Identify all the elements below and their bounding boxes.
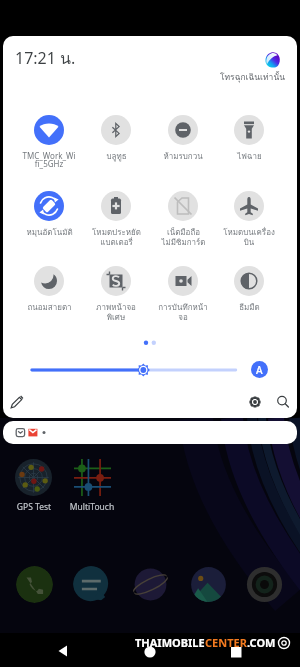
staticText: การบันทึกหน้า จอ	[158, 301, 208, 323]
button[interactable]	[3, 421, 297, 444]
button[interactable]: MultiTouch	[74, 459, 111, 496]
staticText: THAIMOBILE	[135, 635, 205, 650]
staticText: โหมดบนเครื่อง บิน	[223, 226, 275, 248]
staticText: ไฟฉาย	[237, 150, 262, 163]
staticText: ภาพหน้าจอ พิเศษ	[96, 301, 136, 323]
staticText: บลูทูธ	[106, 150, 127, 163]
staticText: .COM	[247, 635, 276, 650]
staticText: ห้ามรบกวน	[163, 150, 203, 163]
button[interactable]: GPS Test	[15, 459, 52, 496]
button[interactable]: Back	[47, 634, 79, 666]
staticText: โทรฉุกเฉินเท่านั้น	[214, 70, 285, 84]
button[interactable]: โหมดบนเครื่อง บิน	[216, 191, 282, 249]
button[interactable]: Search	[272, 391, 294, 413]
button[interactable]: Edit tiles	[6, 391, 28, 413]
button[interactable]: Camera	[246, 566, 283, 603]
button[interactable]: Phone	[16, 566, 53, 603]
button[interactable]: TMC_Work_Wi fi_5GHz	[16, 115, 82, 173]
button[interactable]: โหมดประหยัด แบตเตอรี่	[83, 191, 149, 249]
staticText: TMC_Work_Wi fi_5GHz	[22, 150, 76, 169]
button[interactable]: Home	[134, 634, 166, 666]
staticText: CENTER	[205, 635, 247, 650]
button[interactable]: เน็ตมือถือ ไม่มีซิมการ์ด	[150, 191, 216, 249]
button[interactable]: บลูทูธ	[83, 115, 149, 173]
button[interactable]: Recents	[220, 634, 252, 666]
button[interactable]: Messages	[73, 566, 110, 603]
staticText: GPS Test	[7, 501, 61, 513]
button[interactable]: หมุนอัตโนมัติ	[16, 191, 82, 249]
button[interactable]: Browser	[132, 566, 169, 603]
button[interactable]: ห้ามรบกวน	[150, 115, 216, 173]
staticText: A	[256, 363, 263, 377]
staticText: เน็ตมือถือ ไม่มีซิมการ์ด	[161, 226, 206, 248]
button[interactable]: ไฟฉาย	[216, 115, 282, 173]
staticText: โหมดประหยัด แบตเตอรี่	[92, 226, 141, 248]
staticText: ธีมมืด	[239, 301, 260, 314]
button[interactable]: ถนอมสายตา	[16, 266, 82, 324]
staticText: 17:21 น.	[15, 46, 76, 71]
button[interactable]: Auto brightness	[251, 361, 268, 378]
staticText: MultiTouch	[64, 501, 120, 513]
button[interactable]: ธีมมืด	[216, 266, 282, 324]
staticText: หมุนอัตโนมัติ	[26, 226, 73, 239]
staticText: ถนอมสายตา	[27, 301, 72, 314]
button[interactable]: Brightness	[22, 358, 250, 382]
button[interactable]: ภาพหน้าจอ พิเศษ	[83, 266, 149, 324]
button[interactable]: Settings	[244, 391, 266, 413]
button[interactable]: การบันทึกหน้า จอ	[150, 266, 216, 324]
button[interactable]: Gallery	[190, 566, 227, 603]
button[interactable]: Network badge	[265, 52, 281, 68]
